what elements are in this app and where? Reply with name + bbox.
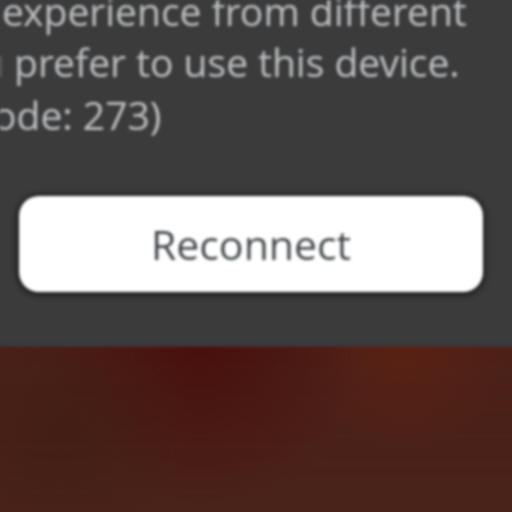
staticText: ode: 273) <box>0 88 162 141</box>
staticText: Reconnect <box>151 216 351 272</box>
staticText: experience from different <box>2 0 467 37</box>
button[interactable]: Reconnect <box>19 196 483 292</box>
staticText: u prefer to use this device. <box>0 35 460 88</box>
